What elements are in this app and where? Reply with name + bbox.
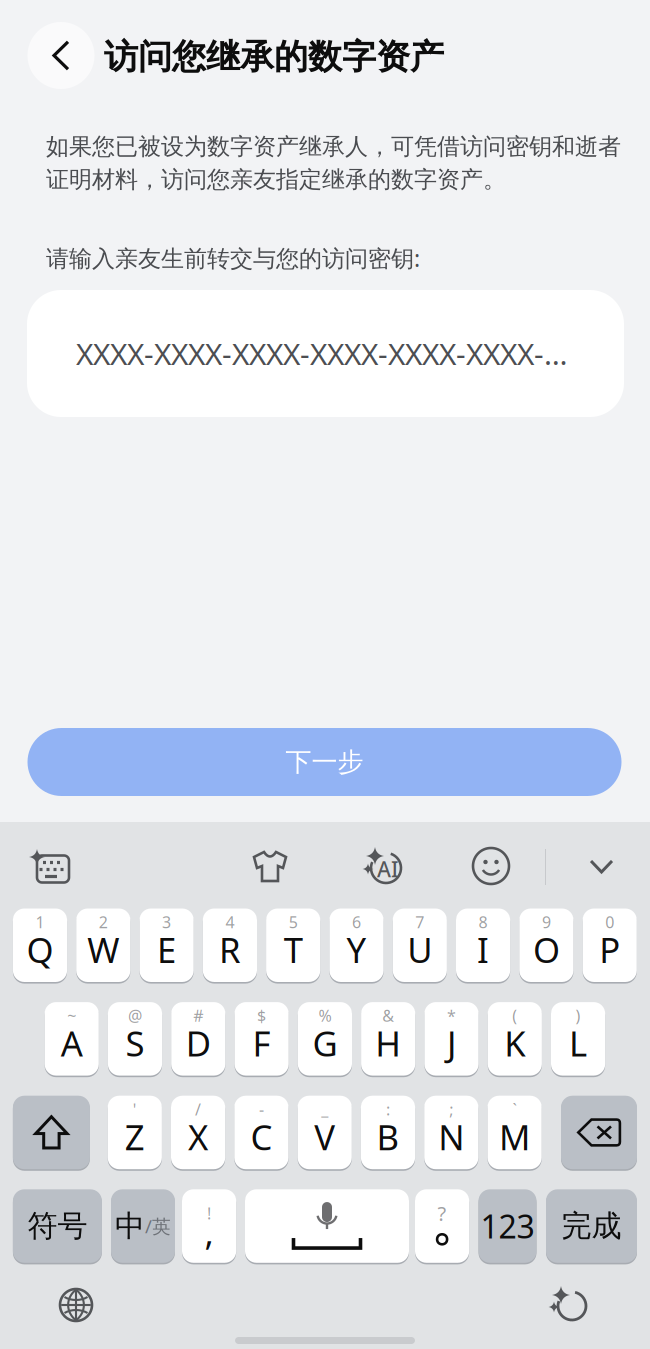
button[interactable]: 完成: [546, 1189, 637, 1263]
staticText: $: [257, 1005, 266, 1026]
button[interactable]: $: [234, 1002, 289, 1076]
staticText: R: [219, 926, 241, 973]
button[interactable]: AI assistant: [364, 847, 404, 885]
button[interactable]: Back: [27, 22, 94, 89]
staticText: (: [512, 1005, 517, 1026]
button[interactable]: (: [488, 1002, 542, 1076]
staticText: `: [513, 1098, 517, 1120]
button[interactable]: @: [108, 1002, 162, 1076]
staticText: 0: [605, 911, 614, 933]
staticText: C: [250, 1113, 272, 1160]
staticText: -: [259, 1098, 264, 1120]
staticText: 4: [225, 911, 234, 933]
button[interactable]: #: [171, 1002, 225, 1076]
staticText: E: [157, 926, 176, 973]
button[interactable]: 9: [519, 908, 573, 982]
staticText: 如果您已被设为数字资产继承人，可凭借访问密钥和逝者证明材料，访问您亲友指定继承的…: [46, 132, 621, 194]
staticText: T: [284, 926, 303, 973]
button[interactable]: !: [182, 1189, 236, 1263]
staticText: :: [386, 1098, 390, 1120]
staticText: &: [382, 1005, 394, 1026]
button[interactable]: 8: [456, 908, 510, 982]
button[interactable]: 1: [13, 908, 67, 982]
button[interactable]: ': [108, 1096, 162, 1169]
staticText: N: [438, 1113, 464, 1160]
staticText: *: [447, 1005, 456, 1026]
button[interactable]: *: [424, 1002, 479, 1076]
button[interactable]: ;: [424, 1096, 478, 1169]
staticText: /英: [145, 1213, 171, 1239]
button[interactable]: -: [234, 1096, 288, 1169]
button[interactable]: 6: [329, 908, 384, 982]
button[interactable]: AI keyboard: [28, 848, 70, 884]
staticText: ): [576, 1005, 581, 1026]
button[interactable]: 下一步: [27, 728, 621, 796]
staticText: P: [599, 926, 620, 973]
staticText: B: [376, 1113, 399, 1160]
button[interactable]: Delete: [561, 1096, 637, 1169]
staticText: L: [569, 1019, 587, 1067]
staticText: _: [321, 1098, 328, 1120]
button[interactable]: :: [361, 1096, 415, 1169]
staticText: %: [318, 1005, 331, 1026]
button[interactable]: 3: [139, 908, 194, 982]
staticText: ,: [205, 1209, 214, 1256]
staticText: @: [128, 1005, 142, 1026]
button[interactable]: /: [171, 1096, 225, 1169]
staticText: 符号: [27, 1207, 87, 1245]
button[interactable]: 7: [393, 908, 447, 982]
button[interactable]: &: [361, 1002, 415, 1076]
button[interactable]: 符号: [13, 1189, 102, 1263]
staticText: ;: [449, 1098, 453, 1120]
button[interactable]: ~: [45, 1002, 99, 1076]
staticText: W: [87, 926, 119, 973]
staticText: AI: [377, 854, 399, 884]
staticText: 1: [35, 911, 44, 933]
button[interactable]: Keyboard theme: [252, 848, 288, 884]
staticText: #: [193, 1005, 203, 1026]
staticText: D: [186, 1019, 211, 1067]
button[interactable]: _: [298, 1096, 352, 1169]
button[interactable]: ): [551, 1002, 605, 1076]
button[interactable]: `: [487, 1096, 542, 1169]
staticText: Y: [346, 926, 366, 973]
staticText: M: [499, 1113, 530, 1160]
staticText: J: [447, 1019, 456, 1067]
staticText: G: [312, 1019, 337, 1067]
button[interactable]: Hide keyboard: [589, 858, 614, 875]
staticText: 7: [415, 911, 424, 933]
button[interactable]: Period: [415, 1189, 469, 1263]
button[interactable]: 5: [266, 908, 320, 982]
button[interactable]: AI rewrite: [551, 1286, 589, 1324]
button[interactable]: 4: [203, 908, 257, 982]
staticText: Z: [125, 1113, 145, 1160]
staticText: U: [407, 926, 432, 973]
button[interactable]: Space: [245, 1189, 409, 1263]
staticText: F: [253, 1019, 271, 1067]
staticText: 下一步: [285, 746, 363, 778]
staticText: 3: [162, 911, 171, 933]
staticText: 6: [352, 911, 361, 933]
staticText: 请输入亲友生前转交与您的访问密钥:: [46, 242, 420, 274]
button[interactable]: %: [298, 1002, 352, 1076]
staticText: V: [314, 1113, 335, 1160]
button[interactable]: 0: [583, 908, 637, 982]
staticText: Q: [26, 926, 53, 973]
staticText: 8: [479, 911, 488, 933]
staticText: X: [188, 1113, 208, 1160]
button[interactable]: Shift: [13, 1096, 90, 1169]
staticText: 123: [480, 1204, 534, 1248]
staticText: S: [125, 1019, 144, 1067]
staticText: I: [477, 926, 489, 973]
staticText: 中: [115, 1207, 145, 1245]
button[interactable]: 中: [111, 1189, 175, 1263]
button[interactable]: 2: [76, 908, 130, 982]
button[interactable]: Emoji: [473, 848, 509, 884]
button[interactable]: Switch keyboard language: [60, 1289, 92, 1321]
staticText: ?: [438, 1200, 447, 1227]
staticText: O: [533, 926, 560, 973]
staticText: A: [61, 1019, 83, 1067]
staticText: ': [133, 1098, 137, 1120]
staticText: !: [207, 1202, 211, 1224]
button[interactable]: 123: [478, 1189, 536, 1263]
